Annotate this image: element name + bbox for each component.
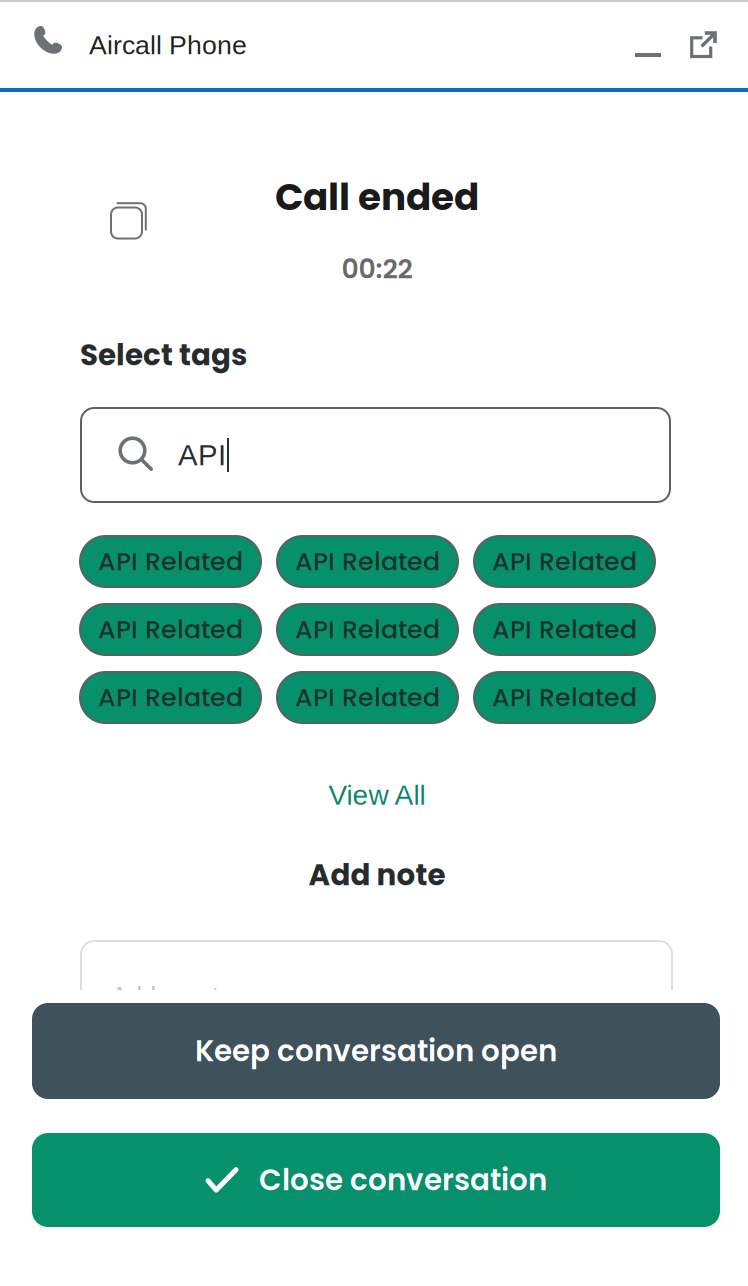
button[interactable]: API Related xyxy=(80,536,261,587)
staticText: Select tags xyxy=(80,334,247,376)
staticText: Close conversation xyxy=(259,1159,547,1201)
button[interactable]: API Related xyxy=(474,536,655,587)
staticText: API Related xyxy=(295,680,440,715)
staticText: API Related xyxy=(295,544,440,579)
button[interactable]: API Related xyxy=(474,672,655,723)
button[interactable]: Open in new window xyxy=(677,22,727,72)
button[interactable]: API Related xyxy=(80,604,261,655)
button[interactable]: API Related xyxy=(474,604,655,655)
staticText: Keep conversation open xyxy=(195,1030,557,1072)
staticText: API Related xyxy=(98,612,243,647)
button[interactable]: Copy xyxy=(107,198,151,242)
staticText: API Related xyxy=(98,680,243,715)
staticText: 00:22 xyxy=(341,250,412,288)
staticText: API Related xyxy=(295,612,440,647)
button[interactable]: API Related xyxy=(277,672,458,723)
button[interactable]: View All xyxy=(3,778,748,812)
button[interactable]: API Related xyxy=(277,604,458,655)
staticText: Add a note xyxy=(111,982,233,1010)
button[interactable]: API Related xyxy=(80,672,261,723)
staticText: Call ended xyxy=(275,171,479,223)
staticText: Add note xyxy=(308,854,445,896)
button[interactable]: Close conversation xyxy=(32,1133,720,1227)
button[interactable]: Keep conversation open xyxy=(32,1003,720,1099)
button[interactable]: Minimize xyxy=(622,26,674,76)
staticText: View All xyxy=(328,779,425,811)
staticText: API Related xyxy=(492,544,637,579)
staticText: API xyxy=(178,439,226,471)
staticText: API Related xyxy=(492,612,637,647)
staticText: API Related xyxy=(492,680,637,715)
button[interactable]: Add a note xyxy=(81,941,672,1101)
button[interactable]: API Related xyxy=(277,536,458,587)
button[interactable]: API xyxy=(81,408,670,502)
staticText: Aircall Phone xyxy=(89,30,247,60)
staticText: API Related xyxy=(98,544,243,579)
